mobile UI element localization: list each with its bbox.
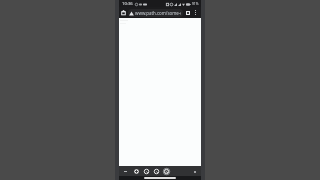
button[interactable]: www.path.com/some-content-here — [128, 9, 183, 17]
button[interactable]: Bookmarks — [142, 167, 151, 176]
staticText: 10:36 — [122, 1, 133, 7]
button[interactable]: More — [192, 167, 198, 176]
button[interactable]: Collapse — [122, 167, 128, 176]
button[interactable]: Add — [132, 167, 141, 176]
button[interactable]: Tabs — [183, 7, 192, 18]
button[interactable]: Home — [119, 7, 128, 18]
button[interactable]: Downloads — [162, 167, 171, 176]
button[interactable]: More options — [192, 7, 199, 18]
staticText: 91% — [192, 2, 199, 6]
staticText: www.path.com/some-content-here — [135, 10, 181, 16]
button[interactable]: History — [152, 167, 161, 176]
